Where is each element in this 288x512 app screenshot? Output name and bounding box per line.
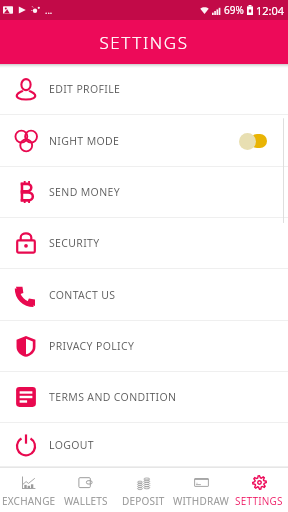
staticText: ... — [45, 4, 53, 16]
staticText: CONTACT US — [49, 288, 116, 302]
button[interactable]: SECURITY — [0, 218, 288, 268]
staticText: WITHDRAW — [173, 494, 230, 508]
button[interactable]: WALLETS — [57, 468, 114, 512]
button[interactable]: PRIVACY POLICY — [0, 321, 288, 371]
staticText: SEND MONEY — [49, 185, 120, 199]
button[interactable]: NIGHT MODE — [0, 115, 288, 166]
staticText: SECURITY — [49, 236, 100, 250]
button[interactable]: Night mode toggle — [239, 131, 267, 151]
staticText: NIGHT MODE — [49, 134, 120, 148]
staticText: DEPOSIT — [122, 494, 165, 508]
staticText: PRIVACY POLICY — [49, 339, 135, 353]
button[interactable]: TERMS AND CONDITION — [0, 372, 288, 422]
staticText: SETTINGS — [99, 31, 189, 54]
staticText: TERMS AND CONDITION — [49, 390, 177, 404]
button[interactable]: EDIT PROFILE — [0, 64, 288, 114]
staticText: EXCHANGE — [2, 494, 56, 508]
staticText: LOGOUT — [49, 438, 94, 452]
button[interactable]: DEPOSIT — [114, 468, 172, 512]
button[interactable]: SEND MONEY — [0, 167, 288, 217]
button[interactable]: LOGOUT — [0, 423, 288, 466]
staticText: 12:04 — [256, 3, 285, 18]
button[interactable]: WITHDRAW — [172, 468, 230, 512]
button[interactable]: EXCHANGE — [0, 468, 57, 512]
staticText: SETTINGS — [235, 494, 283, 508]
staticText: WALLETS — [64, 494, 108, 508]
staticText: 69% — [224, 3, 244, 17]
button[interactable]: CONTACT US — [0, 269, 288, 320]
staticText: EDIT PROFILE — [49, 82, 121, 96]
button[interactable]: SETTINGS — [230, 468, 288, 512]
